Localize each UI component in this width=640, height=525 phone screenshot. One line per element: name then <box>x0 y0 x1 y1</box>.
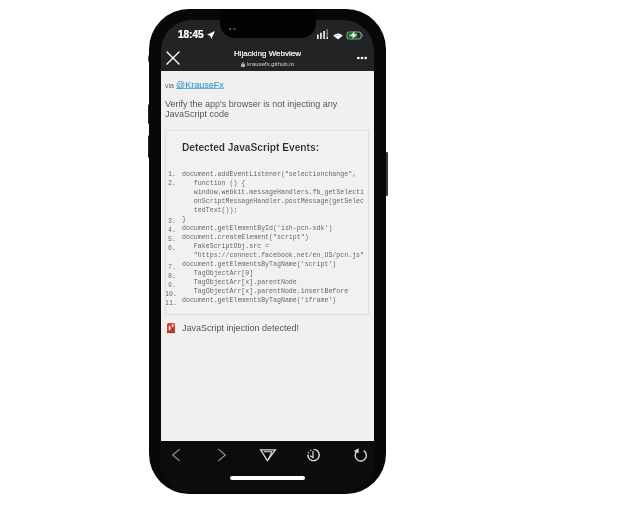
staticText: TagObjectArr[x].parentNode.insertBefore <box>182 288 349 295</box>
staticText: 2. <box>168 180 176 187</box>
button[interactable]: Reload <box>352 447 368 463</box>
staticText: document.getElementById('ish-pcn-sdk') <box>182 225 333 232</box>
staticText: 18:45 <box>178 29 204 40</box>
staticText: TagObjectArr[0] <box>182 270 254 277</box>
staticText: 5. <box>168 236 176 243</box>
staticText: tedText()); <box>182 207 238 214</box>
staticText: Hijacking Webview <box>234 49 301 58</box>
button[interactable]: Share <box>260 447 276 463</box>
staticText: 1. <box>168 171 176 178</box>
staticText: krausefx.github.io <box>247 61 295 68</box>
staticText: document.addEventListener("selectionchan… <box>182 171 357 178</box>
staticText: document.getElementsByTagName('script') <box>182 261 337 268</box>
button[interactable]: Back <box>168 447 184 463</box>
button[interactable]: History <box>305 447 321 463</box>
staticText: 3. <box>168 218 176 225</box>
staticText: FakeScriptObj.src = <box>182 243 270 250</box>
staticText: "https://connect.facebook.net/en_US/pcn.… <box>182 252 365 259</box>
button[interactable]: More options <box>351 47 373 69</box>
staticText: Detected JavaScript Events: <box>182 142 320 153</box>
staticText: 9. <box>168 282 176 289</box>
staticText: Verify the app's browser is not injectin… <box>165 99 338 119</box>
staticText: document.getElementsByTagName('iframe') <box>182 297 337 304</box>
staticText: via <box>165 82 176 90</box>
button[interactable]: @KrauseFx <box>176 80 224 90</box>
button[interactable]: Forward <box>214 447 230 463</box>
staticText: onScriptMessageHandler.postMessage(getSe… <box>182 198 365 205</box>
staticText: function () { <box>182 180 246 187</box>
staticText: 4. <box>168 227 176 234</box>
staticText: TagObjectArr[x].parentNode <box>182 279 297 286</box>
staticText: 6. <box>168 245 176 252</box>
staticText: 11. <box>165 300 176 307</box>
staticText: window.webkit.messageHandlers.fb_getSele… <box>182 189 365 196</box>
staticText: } <box>182 216 186 223</box>
button[interactable]: Close <box>162 47 184 69</box>
staticText: JavaScript injection detected! <box>182 323 300 333</box>
staticText: 10. <box>165 291 176 298</box>
staticText: document.createElement("script") <box>182 234 309 241</box>
staticText: 7. <box>168 264 176 271</box>
staticText: 8. <box>168 273 176 280</box>
